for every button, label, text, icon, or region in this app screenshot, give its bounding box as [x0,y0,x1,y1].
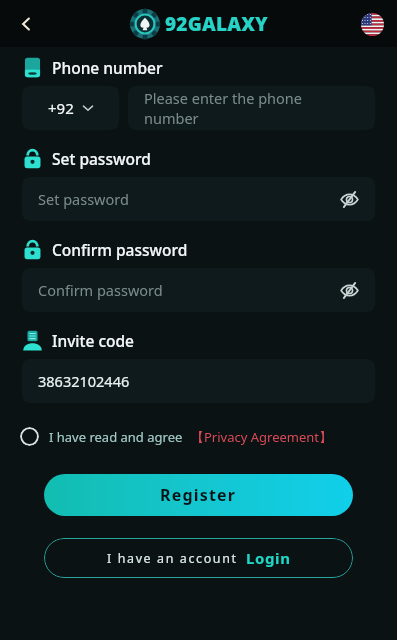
button[interactable]: Register [44,474,353,516]
staticText: 38632102446 [38,371,130,391]
button[interactable]: I have an account [44,538,353,578]
staticText: 92GALAXY [165,11,268,37]
button[interactable]: Language [359,11,385,37]
button[interactable]: Toggle password visibility [335,185,363,213]
button[interactable]: Back [6,4,46,44]
staticText: Invite code [52,330,135,351]
staticText: Set password [38,189,129,209]
staticText: 【Privacy Agreement】 [191,428,333,446]
staticText: Confirm password [52,239,188,260]
staticText: Login [246,548,291,568]
staticText: Set password [52,148,151,169]
button[interactable]: Toggle password visibility [335,276,363,304]
staticText: +92 [48,98,74,118]
button[interactable]: Set password [22,177,375,221]
button[interactable]: 38632102446 [22,359,375,403]
button[interactable]: +92 [22,86,119,130]
button[interactable]: Please enter the phone number [128,86,375,130]
staticText: I have read and agree [49,428,183,446]
button[interactable]: I have read and agree [20,427,377,446]
staticText: Register [160,484,237,506]
staticText: I have an account [107,550,238,567]
staticText: Phone number [52,57,163,78]
staticText: Please enter the phone number [144,88,359,128]
staticText: Confirm password [38,280,163,300]
button[interactable]: Confirm password [22,268,375,312]
